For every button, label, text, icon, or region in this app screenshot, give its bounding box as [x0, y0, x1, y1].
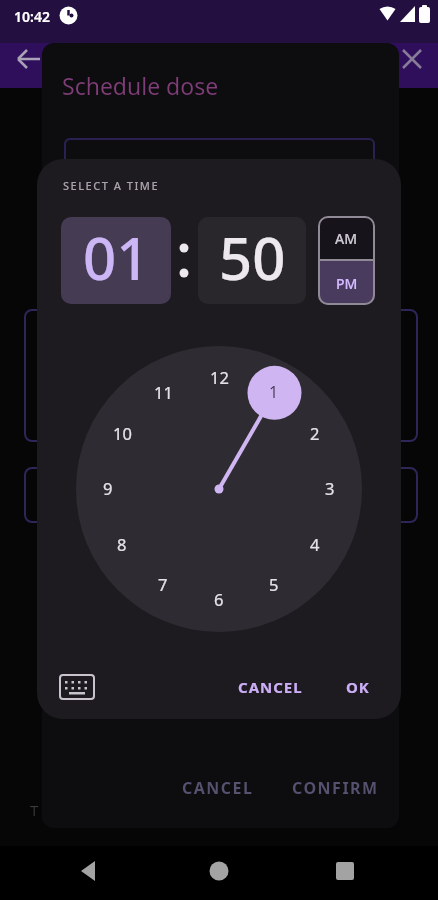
staticText: 8: [117, 533, 127, 555]
staticText: 50: [219, 218, 286, 297]
button[interactable]: 7: [148, 572, 178, 596]
button[interactable]: [12, 41, 48, 77]
staticText: 7: [158, 573, 168, 595]
button[interactable]: [394, 41, 430, 77]
staticText: 2: [310, 422, 320, 444]
staticText: 10: [113, 422, 132, 444]
button[interactable]: 1: [259, 380, 289, 404]
button[interactable]: CANCEL: [230, 674, 310, 700]
button[interactable]: 12: [204, 365, 234, 389]
staticText: 10:42: [14, 7, 50, 26]
staticText: CANCEL: [238, 677, 303, 697]
staticText: 9: [103, 477, 113, 499]
button[interactable]: 50: [198, 217, 306, 304]
button[interactable]: 4: [300, 532, 330, 556]
staticText: T: [30, 800, 39, 820]
button[interactable]: AM: [318, 218, 375, 258]
button[interactable]: 10: [107, 421, 137, 445]
staticText: AM: [335, 229, 358, 248]
staticText: 1: [269, 381, 279, 403]
button[interactable]: 6: [204, 587, 234, 611]
staticText: 5: [269, 573, 279, 595]
staticText: Schedule dose: [62, 70, 219, 100]
staticText: 11: [154, 381, 173, 403]
staticText: 4: [310, 533, 320, 555]
staticText: 01: [83, 218, 150, 297]
staticText: CONFIRM: [292, 777, 379, 799]
staticText: PM: [336, 274, 358, 293]
button[interactable]: 3: [315, 476, 345, 500]
button[interactable]: 8: [107, 532, 137, 556]
button[interactable]: [55, 670, 99, 704]
button[interactable]: PM: [318, 263, 375, 303]
button[interactable]: 5: [259, 572, 289, 596]
staticText: 6: [214, 588, 224, 610]
staticText: SELECT A TIME: [63, 178, 160, 193]
button[interactable]: CONFIRM: [280, 775, 390, 801]
staticText: 12: [210, 366, 229, 388]
staticText: 3: [325, 477, 335, 499]
button[interactable]: 2: [300, 421, 330, 445]
button[interactable]: 11: [148, 380, 178, 404]
button[interactable]: 9: [93, 476, 123, 500]
staticText: OK: [346, 677, 370, 697]
button[interactable]: CANCEL: [175, 775, 260, 801]
button[interactable]: 01: [61, 217, 171, 304]
button[interactable]: [331, 857, 359, 885]
button[interactable]: [205, 857, 233, 885]
button[interactable]: [76, 857, 104, 885]
button[interactable]: OK: [335, 674, 380, 700]
staticText: CANCEL: [182, 777, 254, 799]
